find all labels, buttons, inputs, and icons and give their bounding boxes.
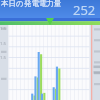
staticText: 1.5 xyxy=(0,26,6,32)
button[interactable]: 本日の発電電力量 xyxy=(0,0,100,18)
staticText: 252 xyxy=(73,1,96,19)
button[interactable]: Current generation marker xyxy=(0,18,100,25)
staticText: 1.5 xyxy=(0,55,6,61)
button[interactable]: Power generation chart xyxy=(0,25,100,100)
staticText: 1.5 xyxy=(0,41,6,47)
staticText: 本日の発電電力量 xyxy=(1,0,62,8)
